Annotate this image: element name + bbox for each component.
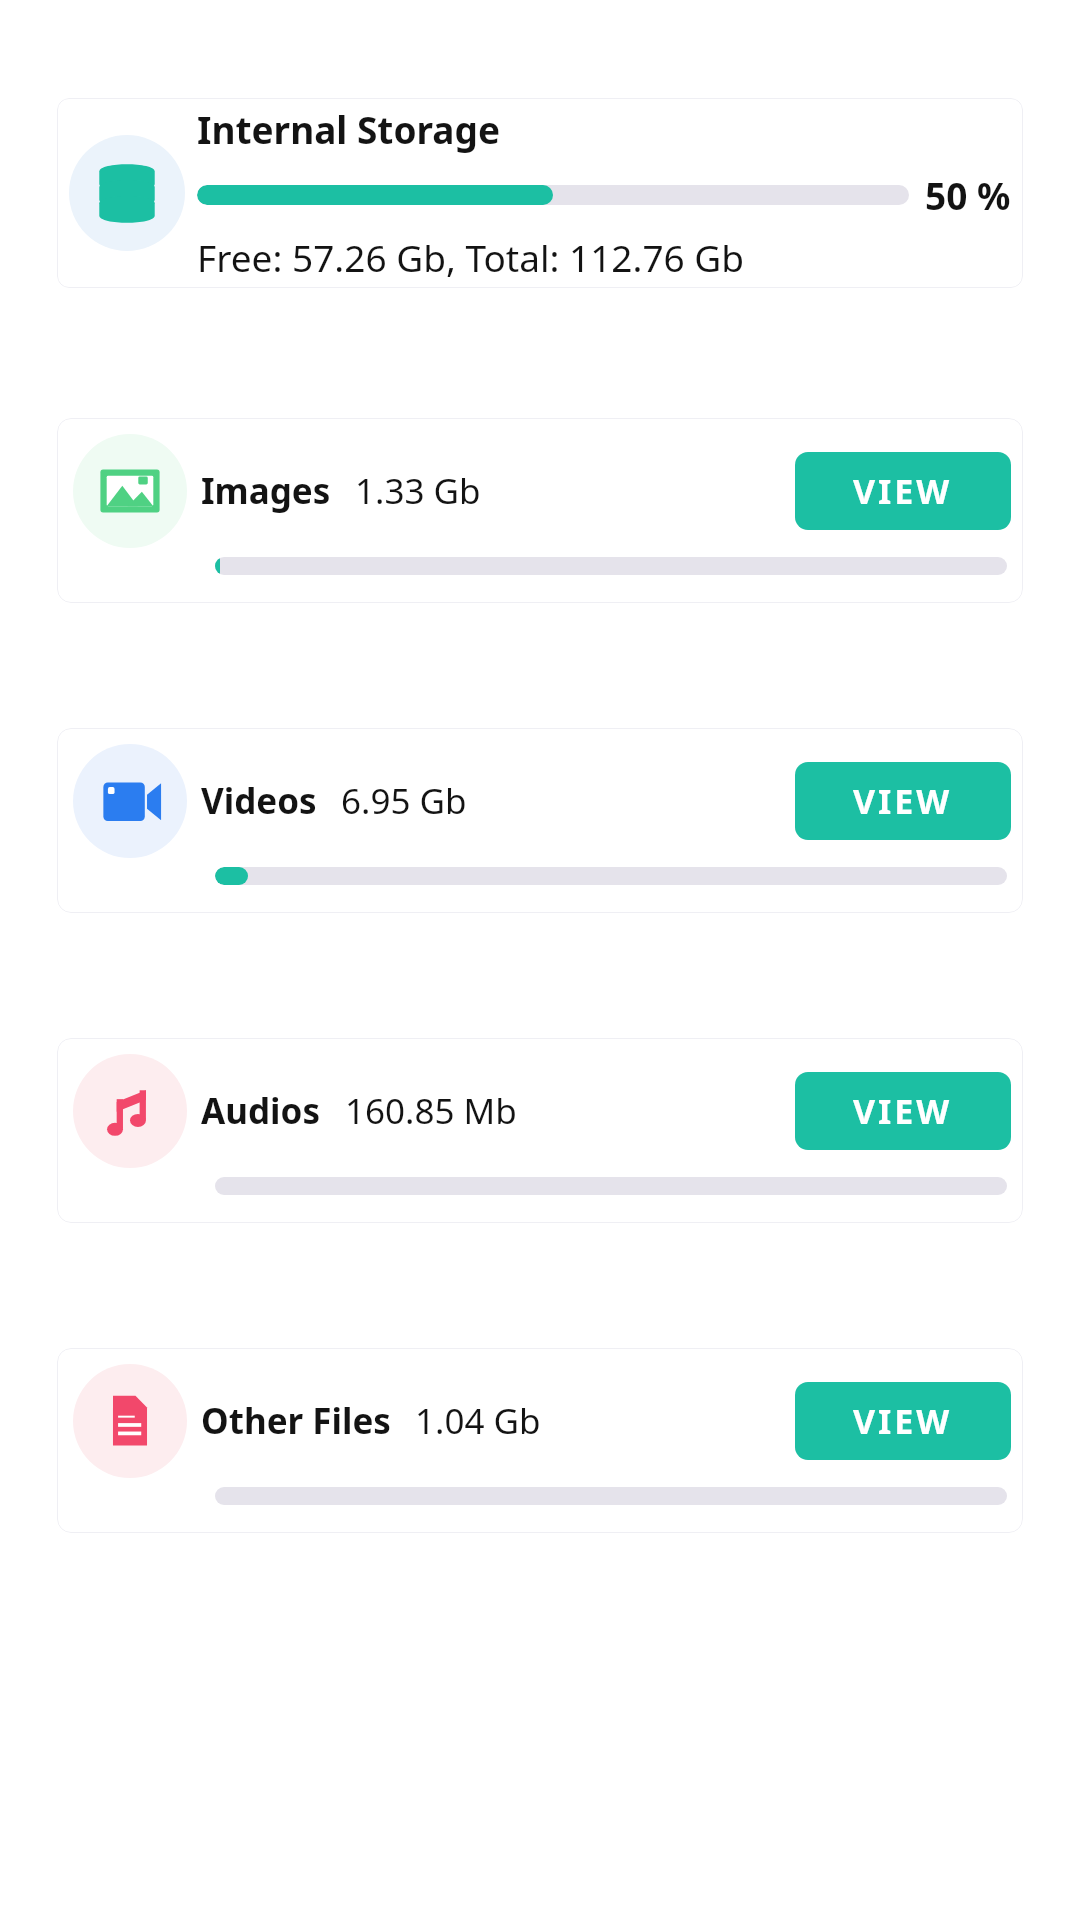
button[interactable]: Images: [57, 418, 1023, 603]
staticText: 1.04 Gb: [415, 1397, 541, 1445]
button[interactable]: Internal Storage: [57, 98, 1023, 288]
staticText: Videos: [201, 777, 317, 825]
staticText: 160.85 Mb: [345, 1087, 517, 1135]
button[interactable]: VIEW: [795, 762, 1011, 840]
staticText: Free: 57.26 Gb, Total: 112.76 Gb: [197, 232, 745, 282]
button[interactable]: Audios: [57, 1038, 1023, 1223]
staticText: Other Files: [201, 1397, 391, 1445]
staticText: VIEW: [853, 778, 953, 824]
staticText: VIEW: [853, 1398, 953, 1444]
button[interactable]: Videos: [57, 728, 1023, 913]
staticText: Audios: [201, 1087, 321, 1135]
button[interactable]: Other Files: [57, 1348, 1023, 1533]
button[interactable]: VIEW: [795, 1382, 1011, 1460]
staticText: 50 %: [925, 170, 1011, 220]
staticText: VIEW: [853, 1088, 953, 1134]
staticText: VIEW: [853, 468, 953, 514]
staticText: Internal Storage: [197, 104, 500, 154]
staticText: Images: [201, 467, 331, 515]
button[interactable]: VIEW: [795, 452, 1011, 530]
staticText: 1.33 Gb: [355, 467, 481, 515]
button[interactable]: VIEW: [795, 1072, 1011, 1150]
staticText: 6.95 Gb: [341, 777, 467, 825]
